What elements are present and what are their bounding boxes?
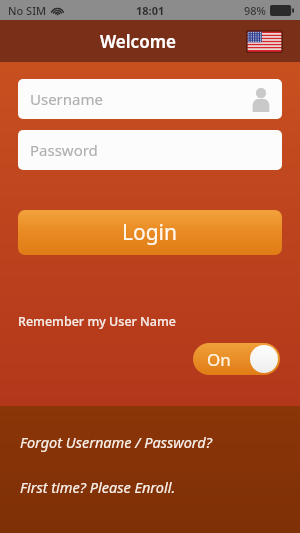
staticText: On xyxy=(207,348,231,371)
staticText: Login xyxy=(122,218,178,247)
button[interactable]: Password xyxy=(18,130,282,170)
button[interactable]: Username xyxy=(18,79,282,119)
staticText: 98% xyxy=(244,3,266,18)
staticText: 18:01 xyxy=(136,3,165,18)
staticText: Remember my User Name xyxy=(18,313,176,330)
staticText: First time? Please Enroll. xyxy=(20,477,176,497)
button[interactable]: Language: English (US) xyxy=(246,30,283,53)
staticText: Welcome xyxy=(100,30,176,53)
staticText: Password xyxy=(30,140,98,160)
staticText: No SIM xyxy=(8,3,47,18)
button[interactable]: First time? Please Enroll. xyxy=(0,475,300,499)
staticText: Username xyxy=(30,89,103,109)
button[interactable]: Remember my User Name toggle, On xyxy=(193,343,280,375)
button[interactable]: Login xyxy=(18,210,282,255)
staticText: Forgot Username / Password? xyxy=(20,432,212,452)
button[interactable]: Forgot Username / Password? xyxy=(0,430,300,454)
